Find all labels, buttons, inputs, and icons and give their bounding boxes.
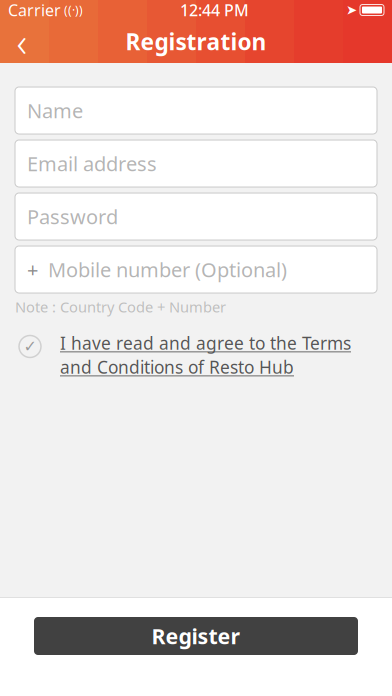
staticText: Note : Country Code + Number bbox=[15, 297, 226, 316]
staticText: + bbox=[27, 256, 38, 283]
staticText: Register bbox=[151, 622, 240, 650]
staticText: Registration bbox=[125, 26, 266, 56]
button[interactable]: Register bbox=[34, 617, 358, 655]
staticText bbox=[357, 1, 360, 19]
staticText: Password bbox=[27, 203, 118, 230]
staticText: Email address bbox=[27, 150, 157, 177]
staticText: ((·)) bbox=[61, 2, 83, 18]
button[interactable]: ✓ bbox=[0, 327, 392, 382]
staticText: ➤ bbox=[346, 2, 357, 17]
staticText: Carrier bbox=[8, 0, 61, 21]
staticText: ‹ bbox=[16, 15, 27, 68]
staticText: 12:44 PM bbox=[180, 0, 249, 21]
button[interactable]: Back bbox=[0, 21, 44, 61]
staticText: I have read and agree to the Terms bbox=[60, 331, 351, 354]
staticText: ✓ bbox=[23, 337, 36, 356]
staticText: Name bbox=[27, 97, 83, 124]
staticText: and Conditions of Resto Hub bbox=[60, 355, 294, 378]
staticText: Mobile number (Optional) bbox=[48, 256, 287, 283]
